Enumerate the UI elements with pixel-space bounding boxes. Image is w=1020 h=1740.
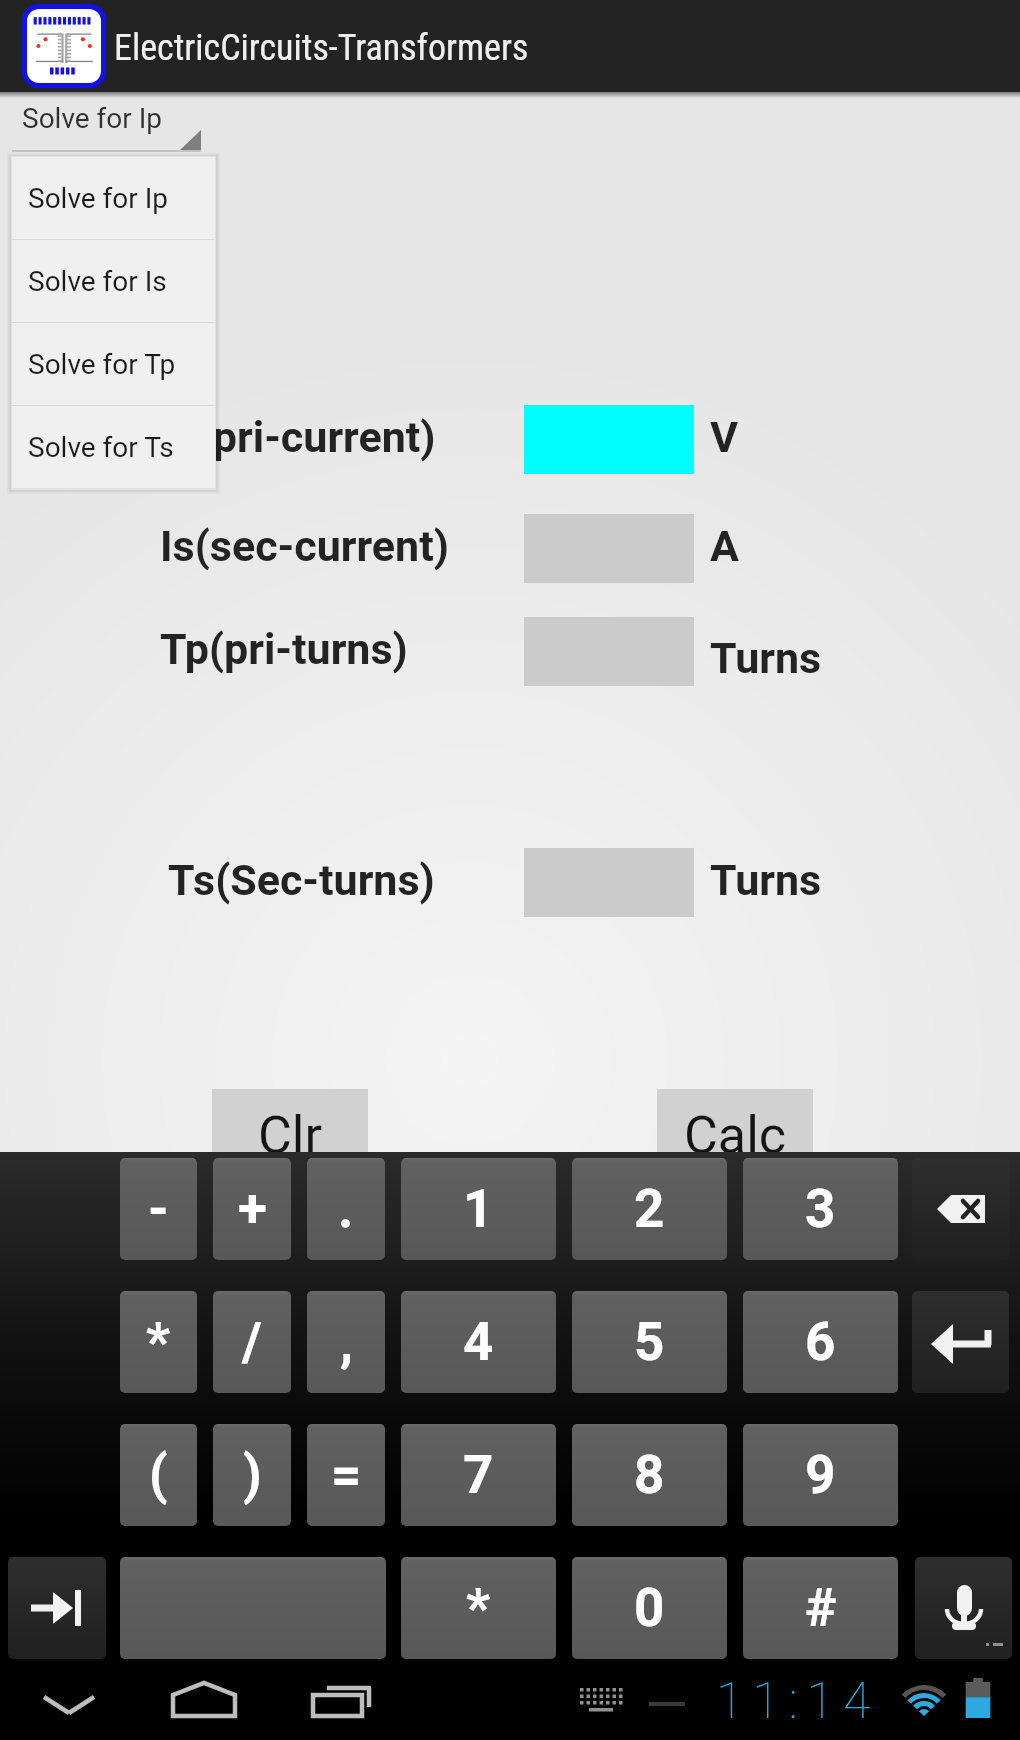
button[interactable]: 9 <box>743 1424 898 1526</box>
staticText: 8 <box>634 1444 665 1506</box>
button[interactable]: Recent apps <box>282 1662 392 1740</box>
staticText: Ts(Sec-turns) <box>168 855 435 905</box>
staticText: Turns <box>710 633 822 683</box>
button[interactable]: 8 <box>572 1424 727 1526</box>
staticText: Solve for Ip <box>28 182 169 215</box>
staticText: Clr <box>258 1105 323 1166</box>
staticText: , <box>340 1311 353 1373</box>
staticText: Is(sec-current) <box>160 521 449 571</box>
button[interactable]: Backspace <box>912 1158 1009 1260</box>
button[interactable]: Enter <box>912 1291 1009 1393</box>
staticText: 4 <box>463 1311 494 1373</box>
staticText: # <box>805 1577 837 1639</box>
button[interactable]: Solve for Ip <box>0 98 216 152</box>
button[interactable]: = <box>307 1424 385 1526</box>
staticText: * <box>466 1577 491 1639</box>
staticText: Ip(pri-current) <box>161 412 436 462</box>
staticText: 7 <box>463 1444 494 1506</box>
button[interactable]: ) <box>213 1424 291 1526</box>
button[interactable]: ElectricCircuits-Transformers <box>0 0 1020 92</box>
button[interactable]: Calc <box>657 1089 813 1181</box>
button[interactable]: 5 <box>572 1291 727 1393</box>
button[interactable]: Clr <box>212 1089 368 1181</box>
staticText: 9 <box>805 1444 836 1506</box>
staticText: Solve for Ts <box>28 431 174 464</box>
staticText: Calc <box>684 1105 786 1166</box>
staticText: Solve for Tp <box>28 348 176 381</box>
staticText: Solve for Ip <box>22 102 163 135</box>
staticText: A <box>710 521 739 571</box>
button[interactable]: Solve for Is <box>12 240 215 322</box>
staticText: ) <box>243 1444 262 1506</box>
button[interactable]: Home <box>149 1662 259 1740</box>
button[interactable]: 2 <box>572 1158 727 1260</box>
button[interactable]: Tab <box>8 1557 106 1659</box>
button[interactable]: , <box>307 1291 385 1393</box>
button[interactable]: 1 <box>401 1158 556 1260</box>
button[interactable] <box>120 1557 386 1659</box>
staticText: Tp(pri-turns) <box>160 624 408 674</box>
staticText: 2 <box>634 1178 665 1240</box>
staticText: 6 <box>805 1311 836 1373</box>
button[interactable]: Solve for Ip <box>12 157 215 239</box>
button[interactable]: + <box>213 1158 291 1260</box>
staticText: 0 <box>634 1577 665 1639</box>
button[interactable]: 4 <box>401 1291 556 1393</box>
button[interactable]: - <box>120 1158 197 1260</box>
button[interactable]: 3 <box>743 1158 898 1260</box>
staticText: 1 <box>463 1178 494 1240</box>
button[interactable]: ( <box>120 1424 197 1526</box>
button[interactable]: Solve for Ts <box>12 406 215 488</box>
staticText: V <box>710 412 739 462</box>
button[interactable]: 7 <box>401 1424 556 1526</box>
staticText: / <box>242 1311 262 1373</box>
button[interactable]: . <box>307 1158 385 1260</box>
staticText: 11:14 <box>716 1672 880 1731</box>
staticText: ( <box>149 1444 168 1506</box>
button[interactable]: 0 <box>572 1557 727 1659</box>
staticText: = <box>331 1444 362 1506</box>
staticText: Turns <box>710 855 822 905</box>
staticText: * <box>146 1311 171 1373</box>
button[interactable]: / <box>213 1291 291 1393</box>
button[interactable]: # <box>743 1557 898 1659</box>
staticText: . <box>338 1178 354 1240</box>
staticText: + <box>238 1178 267 1240</box>
button[interactable]: * <box>401 1557 556 1659</box>
staticText: 3 <box>805 1178 836 1240</box>
staticText: ElectricCircuits-Transformers <box>114 27 529 69</box>
staticText: Solve for Is <box>28 265 167 298</box>
button[interactable]: Hide keyboard <box>14 1662 124 1740</box>
button[interactable]: * <box>120 1291 197 1393</box>
staticText: 5 <box>634 1311 665 1373</box>
button[interactable]: Solve for Tp <box>12 323 215 405</box>
staticText: - <box>148 1178 169 1240</box>
button[interactable]: Voice input <box>915 1557 1012 1659</box>
button[interactable]: 6 <box>743 1291 898 1393</box>
